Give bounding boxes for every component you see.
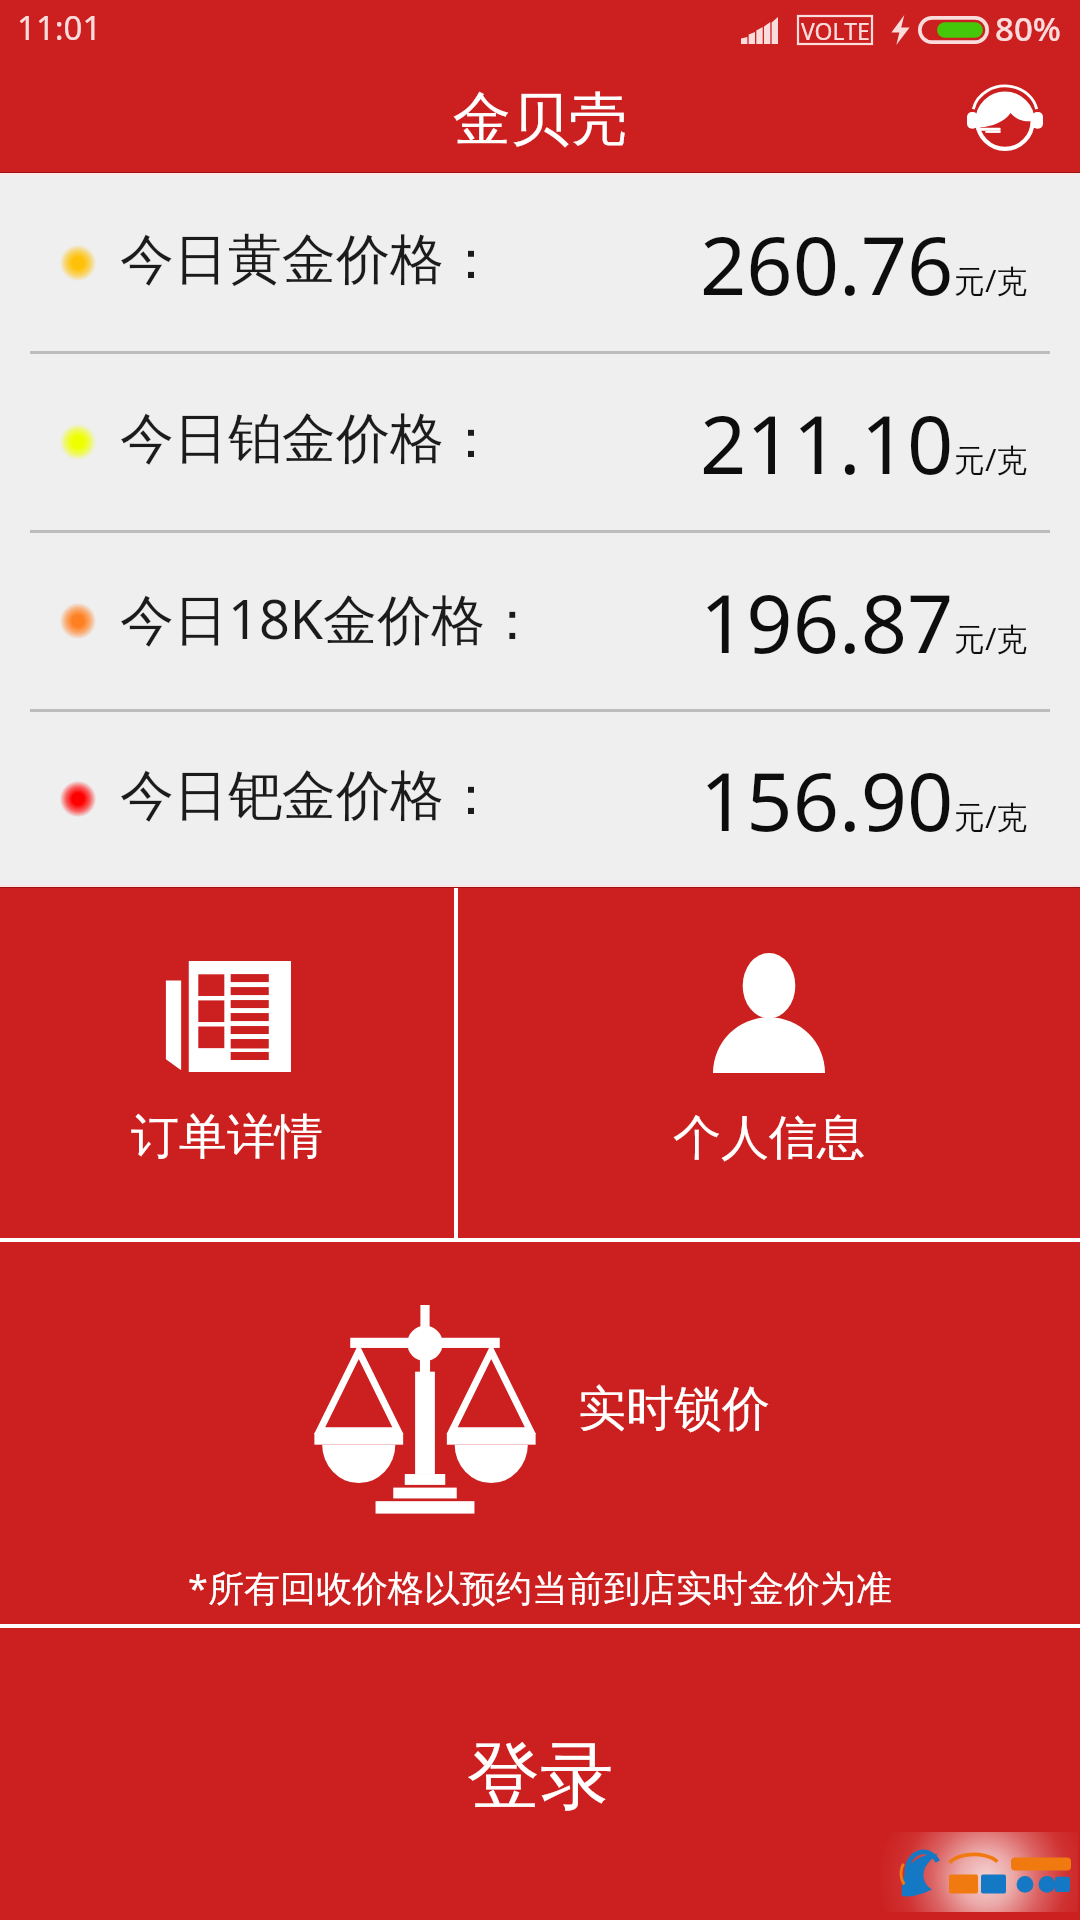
button[interactable]: 今日铂金价格： <box>0 354 1080 530</box>
staticText: 元/克 <box>954 617 1028 659</box>
staticText: 个人信息 <box>673 1108 865 1168</box>
staticText: 今日钯金价格： <box>120 762 498 830</box>
staticText: 元/克 <box>954 438 1028 480</box>
staticText: 元/克 <box>954 259 1028 301</box>
button[interactable]: 今日黄金价格： <box>0 175 1080 351</box>
button[interactable]: 个人信息 <box>458 888 1080 1238</box>
staticText: 金贝壳 <box>453 83 627 156</box>
staticText: VOLTE <box>801 15 870 43</box>
button[interactable]: 今日钯金价格： <box>0 712 1080 885</box>
staticText: 196.87 <box>700 566 954 676</box>
staticText: 211.10 <box>700 387 954 497</box>
staticText: 订单详情 <box>131 1107 323 1167</box>
staticText: 11:01 <box>17 5 102 50</box>
staticText: 156.90 <box>700 744 954 854</box>
button[interactable]: 登录 <box>0 1628 1080 1920</box>
staticText: 今日18K金价格： <box>120 581 540 655</box>
button[interactable]: Customer service <box>963 76 1047 160</box>
button[interactable]: 实时锁价 <box>0 1266 1080 1566</box>
staticText: 260.76 <box>700 208 954 318</box>
staticText: 登录 <box>467 1731 613 1823</box>
button[interactable]: 今日18K金价格： <box>0 533 1080 709</box>
staticText: 今日黄金价格： <box>120 226 498 294</box>
staticText: 元/克 <box>954 795 1028 837</box>
staticText: 今日铂金价格： <box>120 405 498 473</box>
button[interactable]: 订单详情 <box>0 888 454 1238</box>
staticText: 实时锁价 <box>578 1379 770 1439</box>
staticText: *所有回收价格以预约当前到店实时金价为准 <box>0 1563 1080 1612</box>
staticText: 80% <box>995 6 1061 51</box>
